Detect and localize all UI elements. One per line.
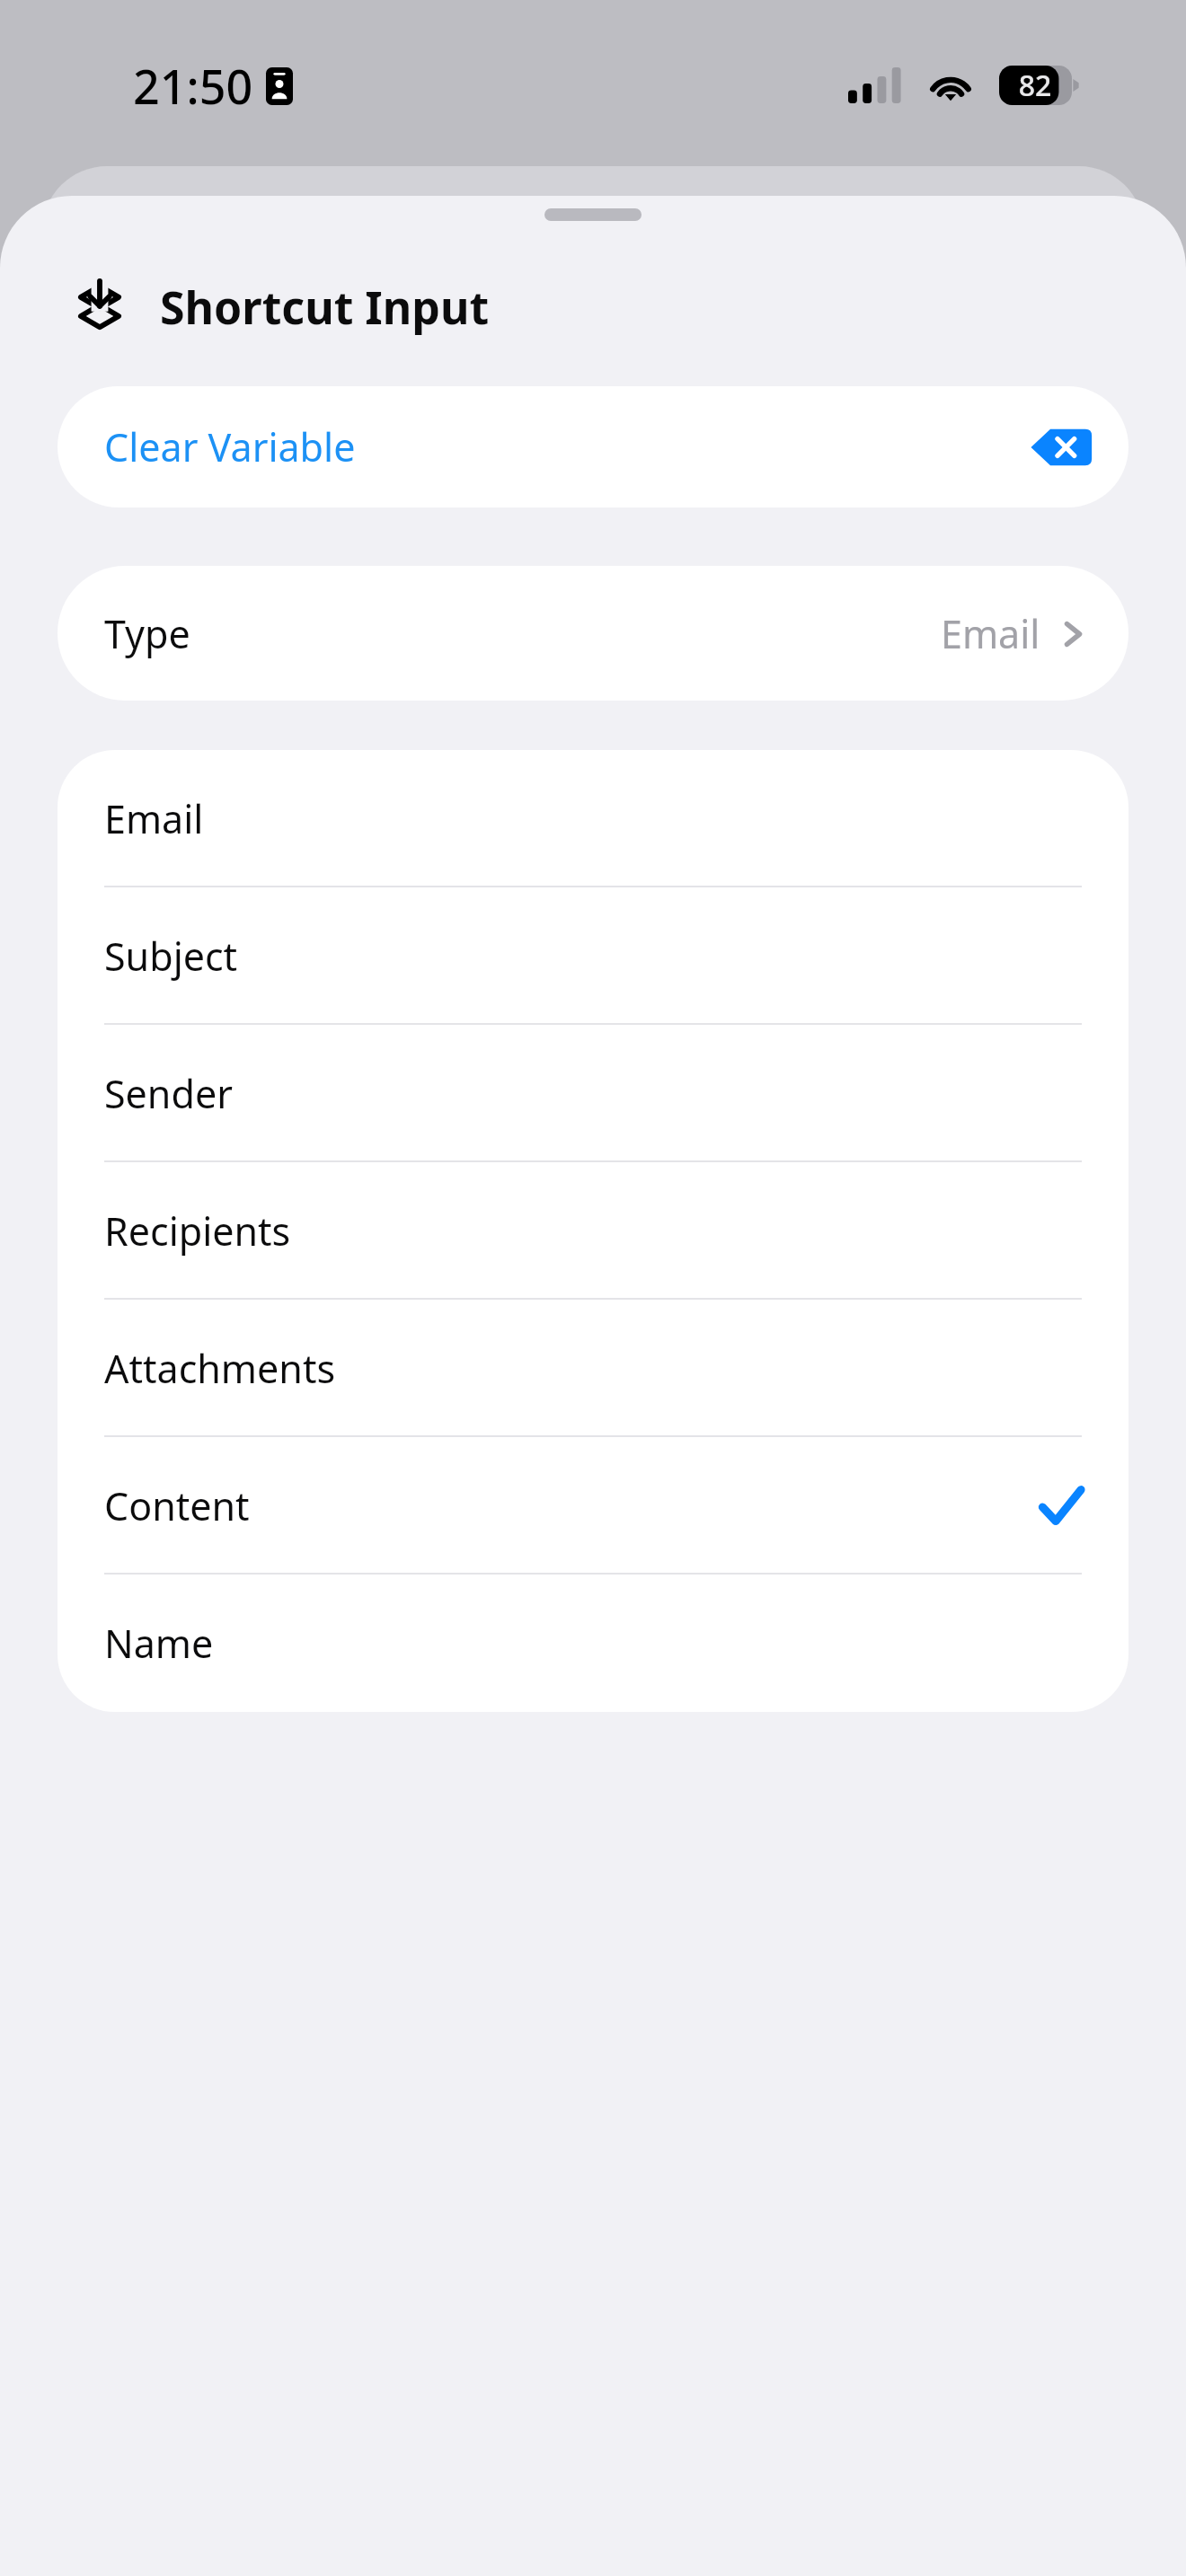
button[interactable]: Type bbox=[58, 566, 1128, 701]
staticText: Recipients bbox=[104, 1204, 291, 1257]
staticText: 82 bbox=[1003, 66, 1067, 105]
button[interactable]: Subject bbox=[58, 887, 1128, 1025]
staticText: Name bbox=[104, 1617, 214, 1670]
button[interactable]: Clear Variable bbox=[58, 386, 1128, 507]
staticText: 21:50 bbox=[133, 54, 253, 118]
staticText: Clear Variable bbox=[104, 420, 356, 473]
staticText: Type bbox=[104, 607, 190, 660]
staticText: Attachments bbox=[104, 1342, 336, 1395]
button[interactable]: Content bbox=[58, 1437, 1128, 1575]
staticText: Content bbox=[104, 1479, 250, 1532]
button[interactable]: Recipients bbox=[58, 1162, 1128, 1300]
button[interactable]: Email bbox=[58, 750, 1128, 887]
button[interactable]: Attachments bbox=[58, 1300, 1128, 1437]
staticText: Email bbox=[104, 792, 204, 845]
staticText: Subject bbox=[104, 930, 238, 983]
staticText: Email bbox=[941, 607, 1040, 660]
staticText: Shortcut Input bbox=[160, 277, 490, 338]
staticText: Sender bbox=[104, 1067, 233, 1120]
button[interactable]: Name bbox=[58, 1575, 1128, 1712]
button[interactable]: Clear variable bbox=[1030, 415, 1094, 480]
button[interactable]: Sender bbox=[58, 1025, 1128, 1162]
